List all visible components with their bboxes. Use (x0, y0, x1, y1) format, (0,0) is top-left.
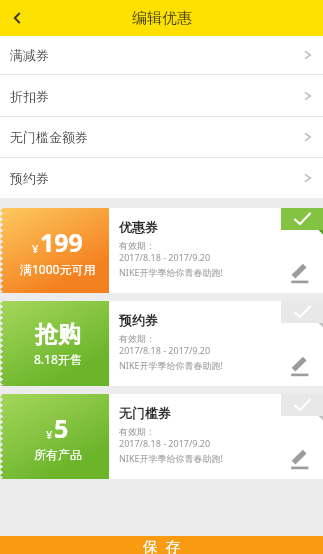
staticText: 折扣券 (10, 88, 49, 104)
staticText: 199 (40, 225, 83, 259)
staticText: ¥ (46, 427, 53, 442)
button[interactable]: Edit (287, 352, 313, 378)
staticText: 预约券 (10, 170, 49, 186)
staticText: 有效期： (119, 240, 155, 251)
staticText: 保 存 (143, 536, 181, 554)
staticText: 8.18开售 (34, 351, 82, 367)
button[interactable]: Select coupon (281, 208, 323, 230)
staticText: 预约券 (119, 312, 158, 328)
staticText: 2017/8.18 - 2017/9.20 (119, 437, 211, 449)
button[interactable]: Edit (287, 259, 313, 285)
staticText: 抢购 (35, 320, 81, 349)
staticText: 5 (54, 411, 69, 445)
staticText: 满减券 (10, 47, 49, 63)
staticText: 无门槛金额券 (10, 129, 88, 145)
staticText: NIKE开学季给你青春助跑! (119, 452, 223, 464)
button[interactable]: 折扣券 (0, 75, 323, 116)
button[interactable]: 预约券 (0, 158, 323, 198)
staticText: NIKE开学季给你青春助跑! (119, 359, 223, 371)
staticText: 所有产品 (34, 447, 82, 462)
button[interactable]: Edit (287, 445, 313, 471)
button[interactable]: ¥ (0, 208, 323, 293)
staticText: 有效期： (119, 426, 155, 437)
staticText: 满1000元可用 (20, 261, 96, 277)
button[interactable]: 满减券 (0, 36, 323, 74)
staticText: 无门槛券 (119, 405, 171, 421)
staticText: NIKE开学季给你青春助跑! (119, 266, 223, 278)
button[interactable]: 保 存 (0, 536, 323, 554)
staticText: ¥ (32, 241, 39, 256)
button[interactable]: 无门槛金额券 (0, 117, 323, 157)
button[interactable]: ¥ (0, 394, 323, 479)
button[interactable]: Select coupon (281, 394, 323, 416)
staticText: 优惠券 (119, 219, 158, 235)
staticText: 编辑优惠 (132, 9, 192, 28)
button[interactable]: Back (0, 1, 34, 35)
staticText: 2017/8.18 - 2017/9.20 (119, 251, 211, 263)
staticText: 2017/8.18 - 2017/9.20 (119, 344, 211, 356)
staticText: 有效期： (119, 333, 155, 344)
button[interactable]: Select coupon (281, 301, 323, 323)
button[interactable]: 抢购 (0, 301, 323, 386)
